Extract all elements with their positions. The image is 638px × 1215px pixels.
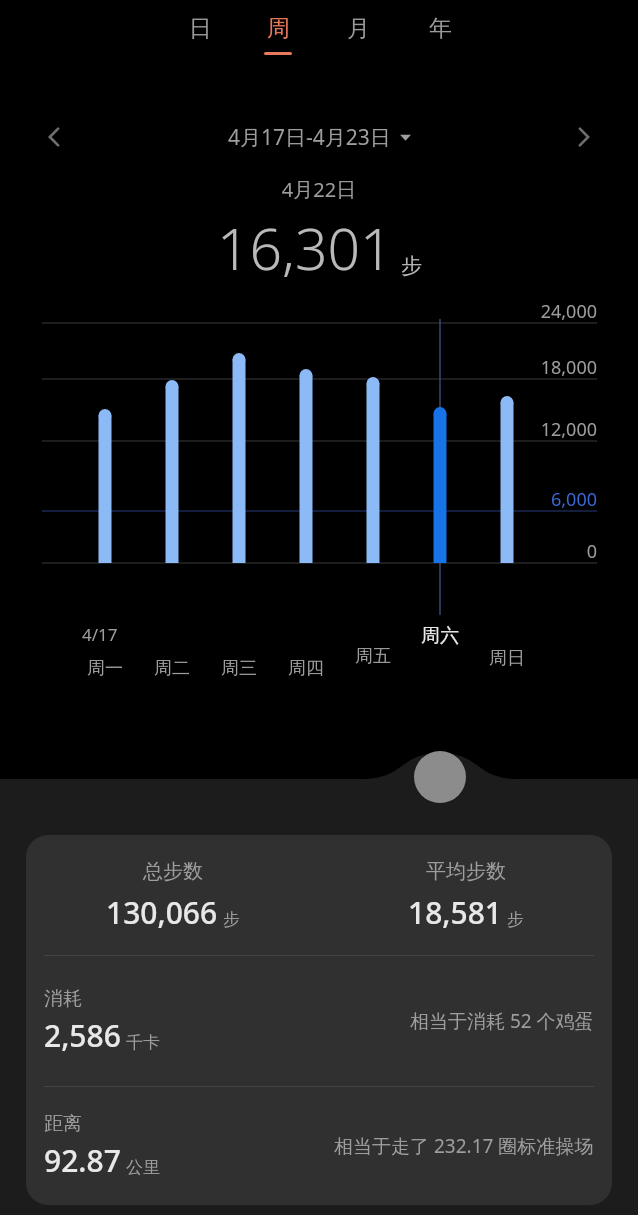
button[interactable]: 周一 bbox=[72, 653, 138, 683]
staticText: 周二 bbox=[154, 657, 190, 680]
staticText: 相当于走了 232.17 圈标准操场 bbox=[334, 1133, 594, 1159]
button[interactable]: 日 bbox=[172, 14, 228, 72]
button[interactable]: 距离 bbox=[26, 1087, 612, 1205]
button[interactable]: Next week bbox=[558, 114, 610, 160]
button[interactable]: 周 bbox=[250, 14, 306, 72]
staticText: 月 bbox=[347, 14, 370, 43]
staticText: 92.87 bbox=[44, 1140, 121, 1181]
staticText: 18,581 bbox=[408, 892, 502, 933]
staticText: 12,000 bbox=[540, 417, 597, 442]
staticText: 周四 bbox=[288, 657, 324, 680]
staticText: 步 bbox=[507, 909, 524, 930]
staticText: 平均步数 bbox=[426, 859, 506, 884]
button[interactable]: 周三 bbox=[206, 653, 272, 683]
staticText: 18,000 bbox=[540, 355, 597, 380]
button[interactable]: 月 bbox=[330, 14, 386, 72]
staticText: 4月17日-4月23日 bbox=[228, 123, 391, 152]
staticText: 日 bbox=[189, 14, 212, 43]
staticText: 总步数 bbox=[143, 859, 203, 884]
button[interactable]: 周日 bbox=[474, 643, 540, 673]
staticText: 6,000 bbox=[550, 487, 597, 512]
staticText: 16,301 bbox=[217, 209, 393, 287]
button[interactable]: 4月17日-4月23日 bbox=[228, 123, 411, 152]
button[interactable]: Previous week bbox=[28, 114, 80, 160]
staticText: 步 bbox=[401, 253, 422, 279]
button[interactable]: 消耗 bbox=[26, 956, 612, 1086]
button[interactable]: 周四 bbox=[273, 653, 339, 683]
staticText: 周三 bbox=[221, 657, 257, 680]
staticText: 周 bbox=[267, 14, 290, 43]
staticText: 年 bbox=[429, 14, 452, 43]
staticText: 4月22日 bbox=[0, 176, 638, 203]
staticText: 2,586 bbox=[44, 1015, 121, 1056]
staticText: 距离 bbox=[44, 1112, 82, 1136]
staticText: 周日 bbox=[489, 647, 525, 670]
staticText: 消耗 bbox=[44, 987, 82, 1011]
staticText: 步 bbox=[223, 909, 240, 930]
staticText: 0 bbox=[586, 539, 597, 564]
button[interactable]: 年 bbox=[412, 14, 468, 72]
staticText: 相当于消耗 52 个鸡蛋 bbox=[410, 1008, 594, 1034]
staticText: 公里 bbox=[126, 1157, 160, 1178]
staticText: 24,000 bbox=[540, 299, 597, 324]
button[interactable]: 周五 bbox=[340, 641, 406, 671]
staticText: 4/17 bbox=[82, 623, 118, 646]
staticText: 周五 bbox=[355, 645, 391, 668]
staticText: 周六 bbox=[421, 624, 459, 648]
staticText: 周一 bbox=[87, 657, 123, 680]
button[interactable]: 周二 bbox=[139, 653, 205, 683]
staticText: 千卡 bbox=[126, 1032, 160, 1053]
button[interactable]: 周六 bbox=[407, 621, 473, 651]
staticText: 130,066 bbox=[106, 892, 218, 933]
